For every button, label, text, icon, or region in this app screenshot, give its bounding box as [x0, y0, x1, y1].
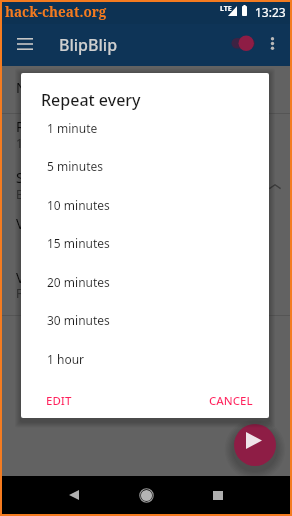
button[interactable]: EDIT [40, 387, 78, 415]
button[interactable]: Vibrate [2, 210, 290, 257]
staticText: 1 minute [47, 120, 98, 136]
button[interactable]: 20 minutes [21, 260, 269, 298]
staticText: hack-cheat.org [5, 3, 107, 21]
staticText: Repeat every [41, 89, 141, 111]
button[interactable]: 30 minutes [21, 298, 269, 336]
button[interactable]: Recent apps [191, 476, 245, 514]
button[interactable]: Home [119, 476, 173, 514]
staticText: 20 minutes [47, 274, 110, 290]
staticText: 1 hour [47, 351, 85, 367]
button[interactable]: Play [234, 424, 276, 466]
staticText: 10 minutes [47, 197, 110, 213]
button[interactable]: 1 hour [21, 337, 269, 375]
button[interactable]: Repeat every [2, 114, 290, 164]
staticText: 13:23 [255, 4, 286, 20]
staticText: Vibrate [16, 214, 63, 233]
button[interactable]: 15 minutes [21, 221, 269, 259]
button[interactable]: Toggle alarm [224, 30, 262, 60]
button[interactable]: 1 minute [21, 106, 269, 144]
button[interactable]: Volume [2, 257, 290, 315]
staticText: BlipBlip [59, 34, 118, 56]
staticText: 30 minutes [47, 312, 110, 328]
staticText: Sound [16, 168, 59, 187]
button[interactable]: CANCEL [203, 387, 259, 415]
button[interactable]: Back [47, 476, 101, 514]
staticText: 5 minutes [47, 158, 103, 174]
button[interactable]: 5 minutes [21, 144, 269, 182]
staticText: Volume [16, 268, 66, 287]
staticText: Bell [16, 186, 37, 202]
button[interactable]: Open navigation menu [9, 30, 39, 60]
staticText: 1 minute [16, 135, 67, 151]
staticText: Follow system [16, 285, 96, 301]
staticText: LTE [220, 4, 232, 14]
staticText: EDIT [46, 393, 72, 409]
staticText: Repeat every [16, 117, 102, 136]
button[interactable]: Notifications [2, 66, 290, 113]
staticText: CANCEL [209, 393, 253, 409]
button[interactable]: More options [260, 29, 286, 61]
staticText: Notifications [16, 78, 100, 97]
button[interactable]: 10 minutes [21, 183, 269, 221]
button[interactable]: Sound [2, 164, 290, 210]
staticText: 15 minutes [47, 235, 110, 251]
